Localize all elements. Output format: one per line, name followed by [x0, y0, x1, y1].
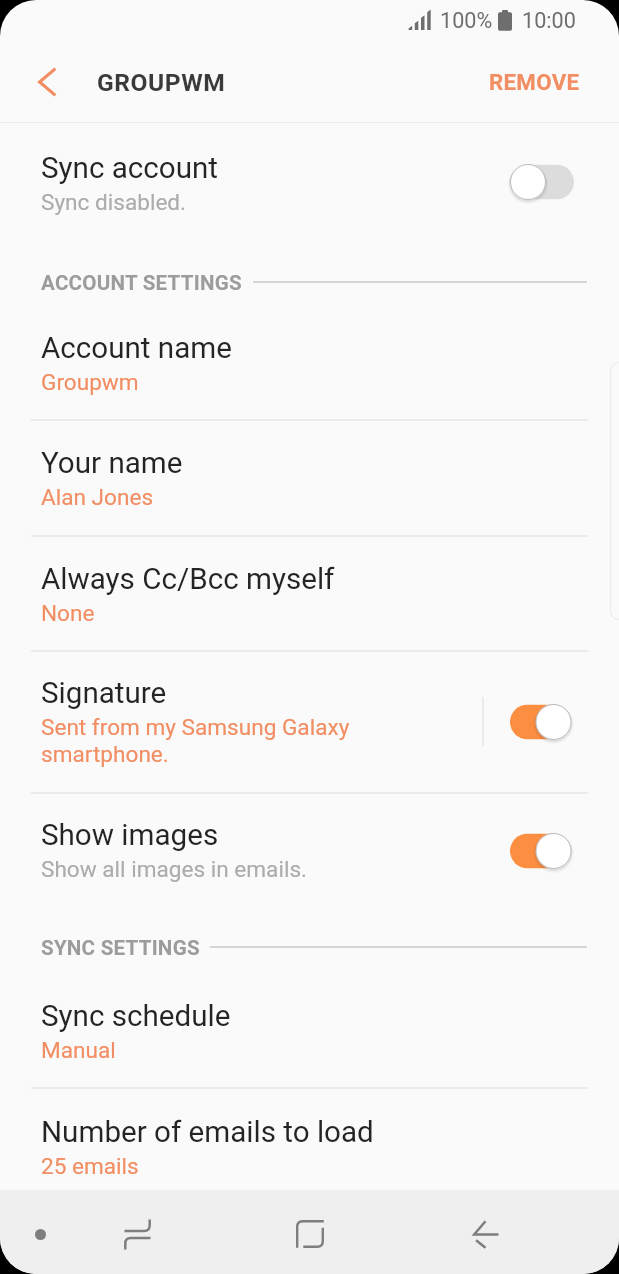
staticText: None	[41, 600, 95, 626]
button[interactable]: Show images toggle, on	[495, 823, 585, 879]
button[interactable]	[0, 419, 619, 535]
button[interactable]	[470, 50, 592, 118]
staticText: Number of emails to load	[41, 1115, 374, 1150]
staticText: smartphone.	[41, 741, 169, 767]
staticText: Sync account	[41, 151, 219, 186]
staticText: GROUPWM	[97, 68, 226, 97]
staticText: ACCOUNT SETTINGS	[41, 271, 242, 295]
staticText: Account name	[41, 331, 232, 366]
staticText: Sync disabled.	[41, 189, 187, 215]
button[interactable]	[0, 304, 619, 419]
button[interactable]: Sync account toggle, off	[498, 154, 588, 210]
staticText: Your name	[41, 446, 183, 481]
button[interactable]	[0, 1088, 619, 1188]
staticText: Always Cc/Bcc myself	[41, 562, 335, 597]
staticText: Show all images in emails.	[41, 856, 308, 882]
button[interactable]: Recent apps	[81, 1192, 193, 1274]
staticText: Sent from my Samsung Galaxy	[41, 714, 350, 740]
staticText: Sync schedule	[41, 999, 231, 1034]
button[interactable]: Home	[254, 1192, 366, 1274]
button[interactable]: More options	[3, 1192, 77, 1274]
button[interactable]: Back	[430, 1192, 542, 1274]
staticText: Signature	[41, 676, 167, 711]
button[interactable]: Navigate up	[13, 48, 81, 116]
staticText: Manual	[41, 1037, 116, 1063]
staticText: 25 emails	[41, 1153, 139, 1179]
button[interactable]	[0, 793, 619, 903]
button[interactable]	[0, 650, 619, 792]
staticText: REMOVE	[489, 69, 580, 95]
staticText: 100%	[440, 8, 493, 33]
staticText: 10:00	[522, 8, 576, 33]
button[interactable]: Signature toggle, on	[495, 694, 585, 750]
button[interactable]	[0, 972, 619, 1088]
staticText: Show images	[41, 818, 219, 853]
button[interactable]	[0, 123, 619, 235]
button[interactable]	[0, 535, 619, 650]
staticText: Alan Jones	[41, 484, 154, 510]
staticText: SYNC SETTINGS	[41, 936, 200, 960]
staticText: Groupwm	[41, 369, 139, 395]
